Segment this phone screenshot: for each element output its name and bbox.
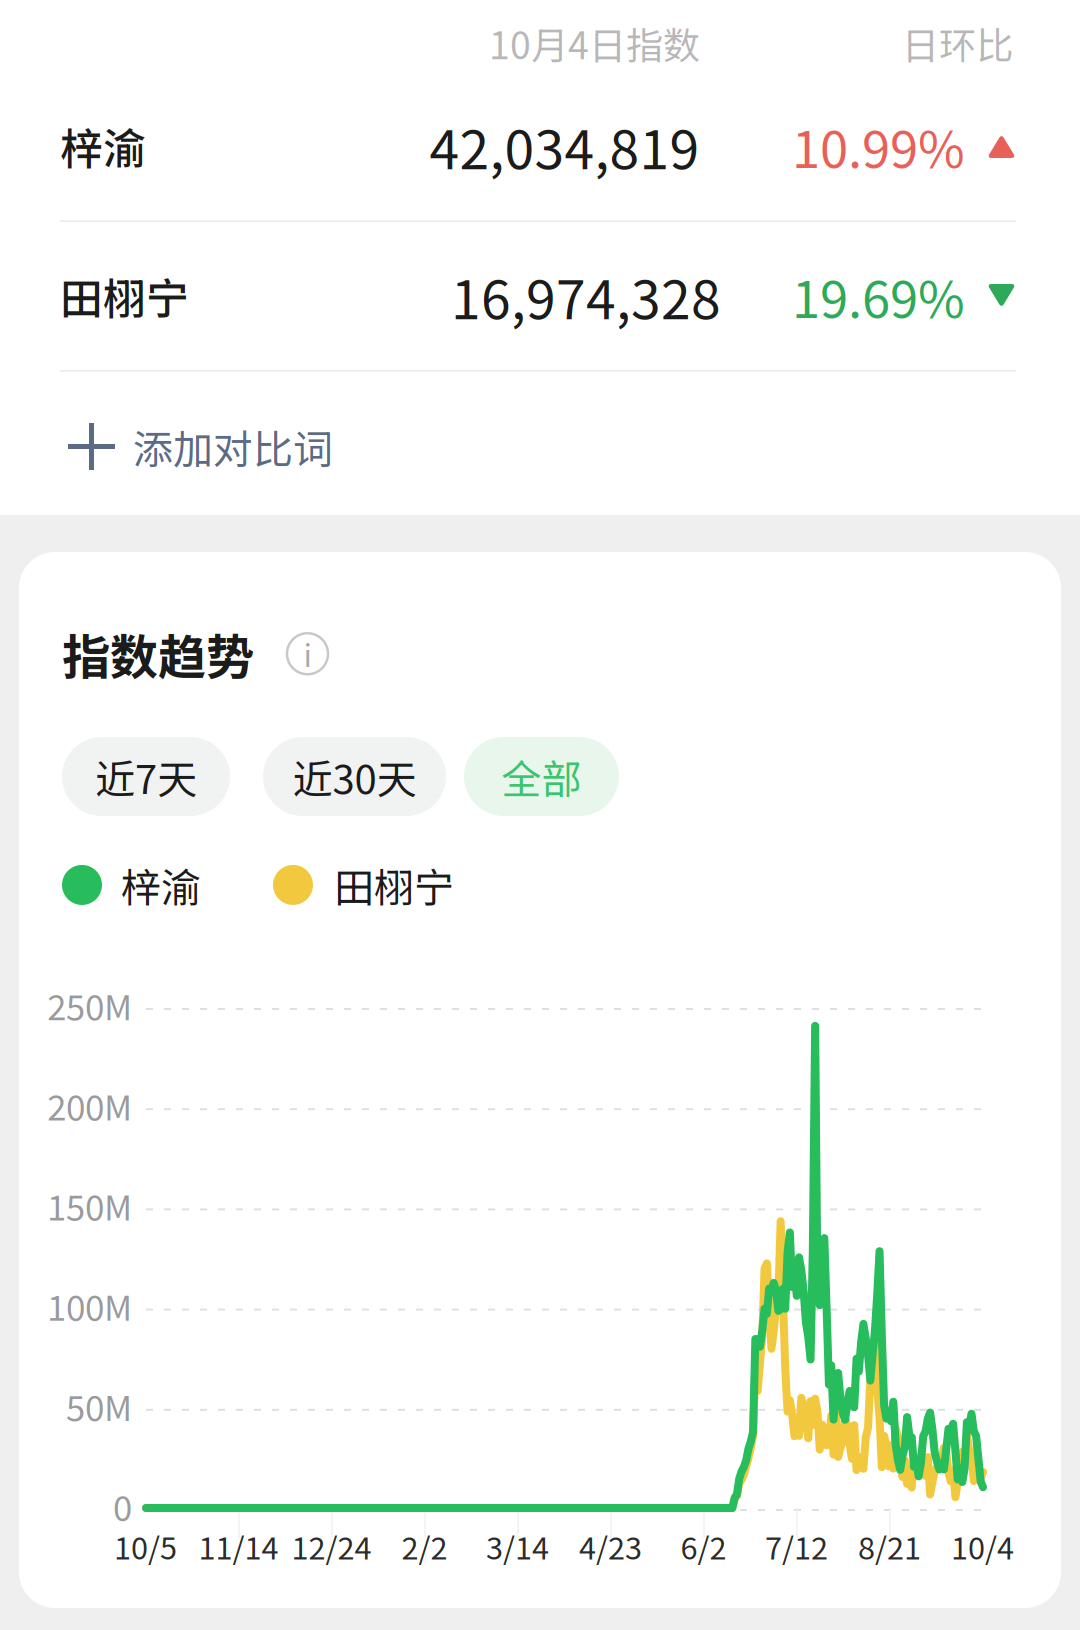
- staticText: 50M: [66, 1381, 132, 1431]
- button[interactable]: 近7天: [62, 737, 230, 816]
- staticText: 田栩宁: [60, 265, 189, 327]
- staticText: 12/24: [291, 1524, 371, 1568]
- button[interactable]: 田栩宁: [0, 222, 1080, 370]
- staticText: 16,974,328: [451, 257, 721, 335]
- staticText: 6/2: [680, 1524, 726, 1568]
- staticText: 42,034,819: [429, 107, 699, 185]
- staticText: 全部: [501, 747, 581, 805]
- staticText: 3/14: [486, 1524, 549, 1568]
- staticText: 日环比: [902, 16, 1013, 70]
- staticText: 8/21: [858, 1524, 921, 1568]
- staticText: 梓渝: [60, 115, 146, 177]
- staticText: 250M: [47, 980, 132, 1030]
- staticText: 10/5: [114, 1524, 177, 1568]
- staticText: 梓渝: [121, 856, 201, 914]
- staticText: 10.99%: [792, 109, 965, 183]
- staticText: 19.69%: [792, 259, 965, 333]
- staticText: 100M: [47, 1281, 132, 1331]
- button[interactable]: 全部: [464, 737, 619, 816]
- staticText: 近30天: [292, 747, 416, 805]
- button[interactable]: 近30天: [263, 737, 446, 816]
- staticText: 田栩宁: [334, 856, 454, 914]
- staticText: 150M: [47, 1180, 132, 1231]
- staticText: 10/4: [951, 1524, 1014, 1568]
- staticText: 4/23: [579, 1524, 642, 1568]
- staticText: i: [303, 631, 311, 676]
- staticText: 0: [113, 1481, 132, 1531]
- staticText: 添加对比词: [133, 417, 333, 475]
- button[interactable]: 添加对比词: [0, 372, 1080, 521]
- staticText: 近7天: [95, 747, 197, 805]
- button[interactable]: 梓渝: [0, 72, 1080, 220]
- staticText: 11/14: [198, 1524, 278, 1568]
- staticText: 10月4日指数: [489, 16, 700, 70]
- staticText: 200M: [47, 1080, 132, 1130]
- button[interactable]: 指数趋势说明: [287, 633, 328, 674]
- staticText: 2/2: [401, 1524, 447, 1568]
- staticText: 7/12: [765, 1524, 828, 1568]
- staticText: 指数趋势: [62, 619, 254, 688]
